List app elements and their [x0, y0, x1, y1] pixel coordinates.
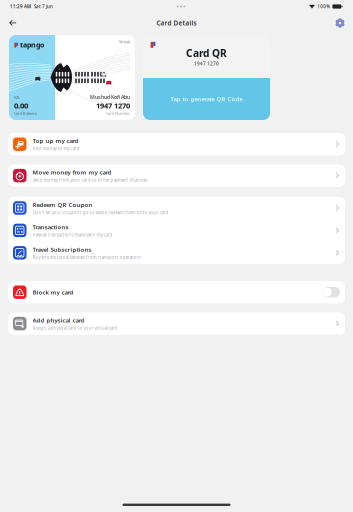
staticText: Transactions — [32, 223, 68, 231]
staticText: 1947 1270 — [96, 101, 130, 111]
staticText: Top up my card — [32, 137, 78, 145]
button[interactable]: Travel Subscriptions — [8, 242, 345, 264]
staticText: Redeem QR Coupon — [32, 201, 92, 209]
staticText: Don't let your coupons go to waste, rede… — [32, 209, 168, 215]
staticText: Assign a physical card to your virtual c… — [32, 325, 117, 331]
button[interactable]: tapngo — [9, 35, 135, 120]
staticText: tapngo — [20, 40, 44, 50]
staticText: 1947 1270 — [194, 60, 219, 67]
staticText: SZL — [14, 95, 20, 100]
staticText: Mushud Kofi Abu — [90, 93, 130, 101]
staticText: Card Balance — [14, 111, 37, 116]
button[interactable]: Add physical card — [8, 312, 345, 335]
button[interactable]: Transactions — [8, 219, 345, 242]
button[interactable]: Card QR — [143, 35, 270, 120]
staticText: Add physical card — [32, 316, 84, 324]
staticText: Card Details — [156, 19, 196, 27]
button[interactable]: Back — [2, 14, 24, 31]
staticText: Send money from your card to other payme… — [32, 177, 147, 183]
staticText: Virtual — [119, 39, 130, 44]
staticText: Add money to my card — [32, 146, 79, 152]
staticText: 0.00 — [14, 100, 28, 111]
staticText: Buy promotional services from transport … — [32, 254, 140, 260]
staticText: Sat 7 Jun — [31, 3, 53, 9]
button[interactable]: Move money from my card — [8, 164, 345, 187]
staticText: Card Number — [106, 111, 130, 116]
button[interactable]: Card settings — [330, 14, 350, 32]
staticText: 11:29 AM — [10, 3, 31, 9]
button[interactable]: Block my card — [8, 281, 345, 303]
staticText: Travel Subscriptions — [32, 245, 91, 253]
staticText: 100% — [317, 3, 330, 9]
button[interactable]: Top up my card — [8, 133, 345, 155]
staticText: Block my card — [32, 288, 73, 296]
staticText: Card QR — [186, 46, 227, 60]
staticText: View all transactions made with my card — [32, 232, 112, 238]
button[interactable]: Redeem QR Coupon — [8, 197, 345, 219]
staticText: Tap to generate QR Code — [170, 95, 242, 103]
staticText: Move money from my card — [32, 168, 111, 176]
